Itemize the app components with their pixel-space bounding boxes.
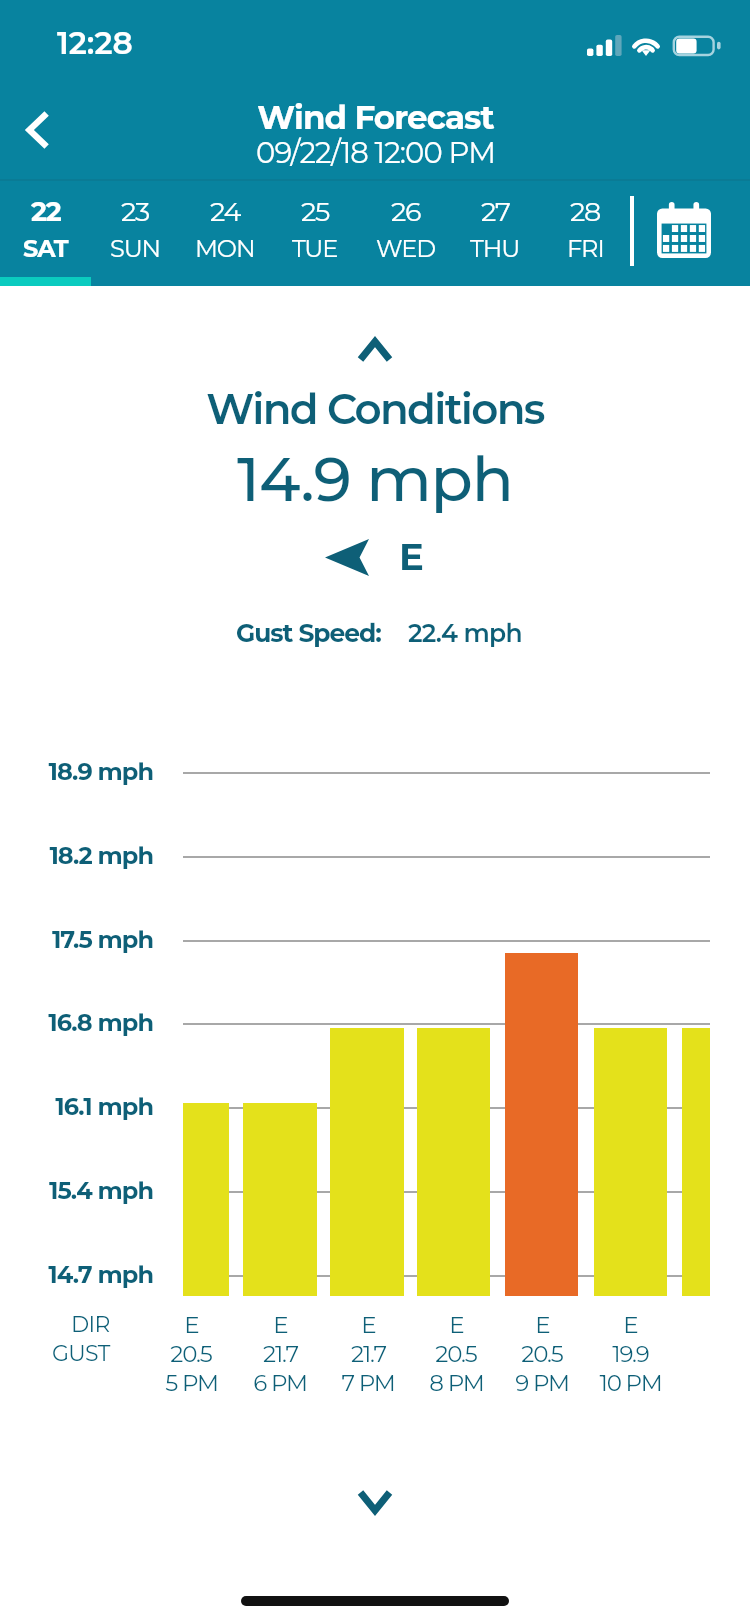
staticText: 20.5 <box>435 1340 477 1368</box>
staticText: GUST <box>52 1340 110 1367</box>
staticText: 21.7 <box>351 1340 386 1368</box>
staticText: 16.8 mph <box>48 1008 153 1037</box>
staticText: Wind Forecast <box>257 98 494 138</box>
staticText: E <box>361 1311 376 1339</box>
staticText: E <box>399 534 424 579</box>
staticText: 6 PM <box>253 1369 307 1397</box>
staticText: 7 PM <box>341 1369 395 1397</box>
staticText: 12:28 <box>57 24 133 62</box>
staticText: 27 <box>481 195 510 228</box>
staticText: 14.9 mph <box>237 441 513 517</box>
button[interactable]: Collapse <box>0 326 750 370</box>
staticText: THU <box>470 234 520 263</box>
button[interactable]: 25 <box>270 181 360 286</box>
staticText: E <box>273 1311 288 1339</box>
staticText: E <box>449 1311 464 1339</box>
staticText: 8 PM <box>429 1369 484 1397</box>
staticText: FRI <box>567 234 604 263</box>
staticText: Wind Conditions <box>206 383 544 434</box>
staticText: 23 <box>121 195 150 228</box>
button[interactable]: 23 <box>90 181 180 286</box>
staticText: WED <box>376 234 435 263</box>
staticText: E <box>535 1311 550 1339</box>
staticText: MON <box>195 234 255 263</box>
staticText: 20.5 <box>521 1340 563 1368</box>
staticText: Gust Speed: <box>236 618 381 648</box>
staticText: 10 PM <box>599 1369 662 1397</box>
staticText: 26 <box>391 195 421 228</box>
button[interactable]: Expand <box>0 1478 750 1526</box>
staticText: 14.7 mph <box>48 1260 153 1289</box>
button[interactable]: 28 <box>540 181 630 286</box>
staticText: 19.9 <box>612 1340 649 1368</box>
staticText: 22 <box>31 195 61 228</box>
staticText: TUE <box>292 234 338 263</box>
staticText: 9 PM <box>515 1369 569 1397</box>
button[interactable]: 22 <box>0 181 90 286</box>
staticText: 20.5 <box>170 1340 212 1368</box>
button[interactable]: Back <box>0 92 76 168</box>
staticText: E <box>184 1311 199 1339</box>
staticText: 18.9 mph <box>48 757 153 786</box>
staticText: 22.4 mph <box>408 618 522 648</box>
staticText: 25 <box>301 195 330 228</box>
staticText: 18.2 mph <box>49 841 153 870</box>
staticText: DIR <box>71 1311 110 1338</box>
staticText: 16.1 mph <box>55 1092 153 1121</box>
staticText: 15.4 mph <box>49 1176 153 1205</box>
button[interactable]: 27 <box>450 181 540 286</box>
staticText: 21.7 <box>263 1340 298 1368</box>
button[interactable]: 24 <box>180 181 270 286</box>
staticText: 5 PM <box>165 1369 218 1397</box>
staticText: SAT <box>23 234 68 263</box>
staticText: E <box>623 1311 638 1339</box>
staticText: 09/22/18 12:00 PM <box>256 135 495 170</box>
staticText: 28 <box>570 195 601 228</box>
button[interactable]: 26 <box>360 181 450 286</box>
staticText: 17.5 mph <box>51 925 153 954</box>
staticText: 24 <box>210 195 241 228</box>
button[interactable]: Calendar <box>646 188 722 272</box>
staticText: SUN <box>110 234 161 263</box>
